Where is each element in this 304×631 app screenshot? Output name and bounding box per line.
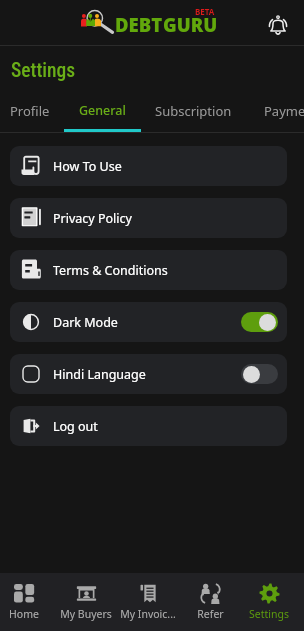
button[interactable]: Switch on: [241, 312, 278, 332]
button[interactable]: Profile: [0, 88, 64, 133]
staticText: Refer: [197, 607, 224, 621]
button[interactable]: Home: [0, 573, 55, 631]
staticText: Settings: [249, 607, 289, 621]
button[interactable]: Dark Mode: [10, 302, 287, 342]
staticText: Profile: [10, 102, 50, 120]
button[interactable]: Terms & Conditions: [10, 250, 287, 290]
button[interactable]: Notifications: [265, 8, 291, 34]
staticText: Payment: [264, 102, 304, 120]
staticText: General: [79, 102, 126, 119]
button[interactable]: Log out: [10, 406, 287, 446]
staticText: BETA: [195, 6, 215, 17]
button[interactable]: Hindi Language: [10, 354, 287, 394]
button[interactable]: My Invoic...: [117, 573, 179, 631]
button[interactable]: Settings: [241, 573, 297, 631]
staticText: How To Use: [53, 158, 122, 175]
staticText: My Buyers: [60, 607, 112, 621]
button[interactable]: Payment: [246, 88, 304, 133]
staticText: My Invoic...: [120, 607, 176, 621]
staticText: Dark Mode: [53, 314, 118, 331]
staticText: Subscription: [155, 102, 232, 120]
staticText: Log out: [53, 418, 98, 435]
staticText: Settings: [11, 59, 76, 82]
button[interactable]: Subscription: [141, 88, 246, 133]
button[interactable]: Refer: [179, 573, 241, 631]
staticText: DEBT: [115, 12, 163, 37]
button[interactable]: Switch off: [241, 364, 278, 384]
staticText: Hindi Language: [53, 366, 146, 383]
button[interactable]: General: [64, 88, 141, 133]
button[interactable]: How To Use: [10, 146, 287, 186]
staticText: Home: [9, 607, 39, 621]
button[interactable]: My Buyers: [55, 573, 117, 631]
button[interactable]: Privacy Policy: [10, 198, 287, 238]
staticText: Privacy Policy: [53, 210, 132, 227]
staticText: GURU: [163, 12, 218, 37]
staticText: Terms & Conditions: [53, 262, 168, 279]
